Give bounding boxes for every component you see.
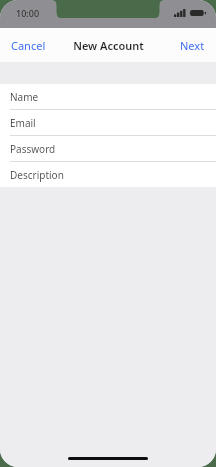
button[interactable]: Next: [169, 30, 216, 61]
button[interactable]: Cancel: [0, 30, 57, 61]
button[interactable]: Email: [0, 110, 216, 135]
staticText: Email: [10, 116, 36, 130]
staticText: New Account: [73, 38, 144, 53]
staticText: Password: [10, 142, 56, 156]
staticText: Next: [180, 38, 205, 53]
staticText: Cancel: [11, 38, 46, 53]
button[interactable]: Password: [0, 136, 216, 161]
staticText: Name: [10, 90, 39, 104]
staticText: 10:00: [16, 7, 40, 19]
other: Home indicator: [68, 457, 148, 460]
staticText: Description: [10, 168, 64, 182]
button[interactable]: Description: [0, 162, 216, 187]
button[interactable]: Name: [0, 84, 216, 109]
